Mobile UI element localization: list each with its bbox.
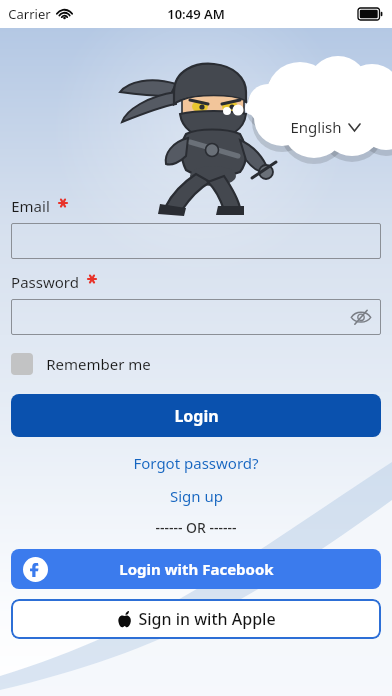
button[interactable]: Show password — [350, 309, 372, 325]
staticText: Forgot password? — [133, 453, 259, 473]
staticText: Carrier — [8, 5, 51, 23]
staticText: 10:49 AM — [167, 5, 225, 23]
staticText: Sign in with Apple — [138, 608, 276, 630]
button[interactable] — [11, 223, 381, 259]
staticText: English — [290, 117, 342, 137]
button[interactable]: Login — [11, 394, 381, 437]
staticText: Email — [11, 196, 50, 216]
staticText: Login with Facebook — [119, 559, 274, 579]
staticText: Login — [174, 405, 219, 427]
button[interactable]: Sign up — [11, 483, 381, 509]
staticText: Remember me — [46, 354, 151, 374]
staticText: Password — [11, 272, 79, 292]
button[interactable]: English — [288, 115, 362, 139]
button[interactable]: Show password — [11, 299, 381, 335]
button[interactable]: Sign in with Apple — [11, 599, 381, 639]
button[interactable]: Login with Facebook — [11, 549, 381, 589]
staticText: Sign up — [170, 486, 223, 506]
button[interactable]: Forgot password? — [11, 450, 381, 476]
button[interactable]: Remember me — [11, 350, 151, 378]
staticText: ------ OR ------ — [155, 518, 237, 537]
